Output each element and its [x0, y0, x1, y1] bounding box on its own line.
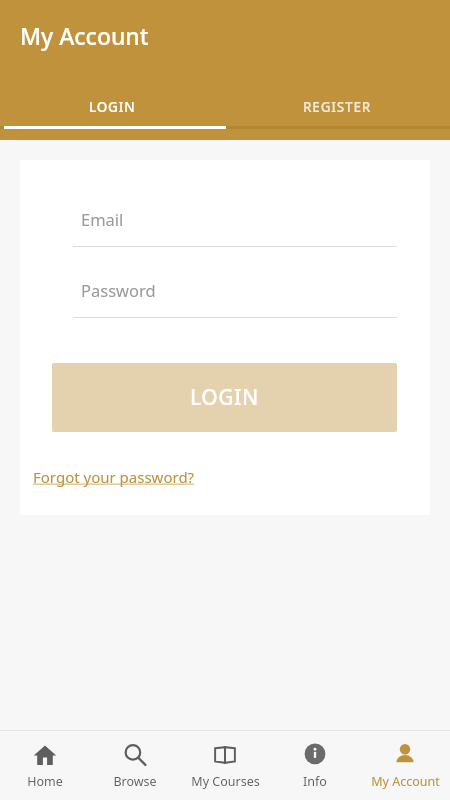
button[interactable]: My Courses [180, 731, 270, 800]
staticText: Browse [113, 773, 157, 790]
button[interactable]: LOGIN [52, 363, 397, 432]
button[interactable]: LOGIN [0, 88, 225, 126]
button[interactable]: Forgot your password? [33, 465, 195, 489]
button[interactable]: REGISTER [225, 88, 450, 126]
staticText: My Account [371, 773, 440, 790]
staticText: LOGIN [190, 383, 259, 412]
staticText: Password [81, 279, 156, 301]
staticText: My Account [20, 20, 149, 51]
staticText: Email [81, 208, 124, 230]
button[interactable]: Password [73, 275, 397, 318]
button[interactable]: My Account [360, 731, 450, 800]
staticText: Forgot your password? [33, 467, 195, 487]
staticText: My Courses [191, 773, 260, 790]
button[interactable]: Info [270, 731, 360, 800]
staticText: LOGIN [89, 98, 136, 116]
staticText: Info [303, 773, 327, 790]
staticText: Home [27, 773, 63, 790]
button[interactable]: Email [73, 204, 397, 247]
button[interactable]: Browse [90, 731, 180, 800]
staticText: REGISTER [303, 98, 372, 116]
button[interactable]: Home [0, 731, 90, 800]
